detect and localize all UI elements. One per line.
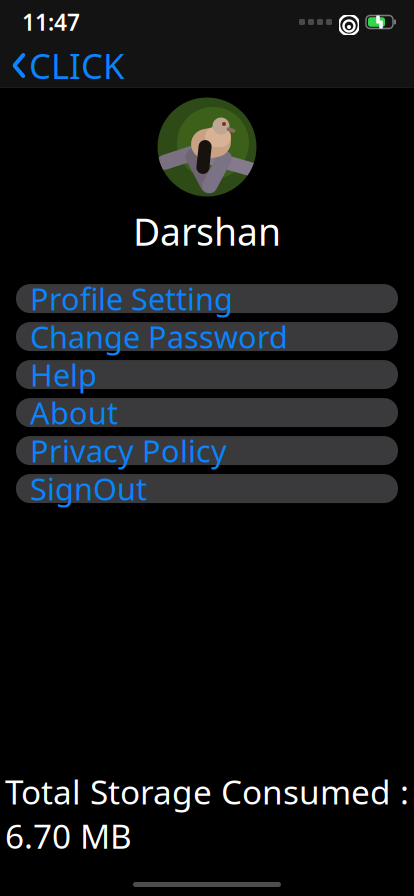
staticText: 11:47 (22, 7, 80, 37)
staticText: Help (30, 354, 97, 395)
button[interactable]: About (16, 398, 398, 427)
staticText: SignOut (30, 468, 147, 509)
staticText: Change Password (30, 316, 288, 357)
button[interactable]: Privacy Policy (16, 436, 398, 465)
staticText: About (30, 392, 118, 433)
staticText: CLICK (29, 42, 124, 88)
button[interactable]: Help (16, 360, 398, 389)
button[interactable]: Change Password (16, 322, 398, 351)
button[interactable]: Profile Setting (16, 284, 398, 313)
staticText: Total Storage Consumed : 6.70 MB (5, 769, 409, 858)
staticText: Darshan (133, 206, 281, 256)
staticText: Privacy Policy (30, 430, 227, 471)
button[interactable]: SignOut (16, 474, 398, 503)
button[interactable]: CLICK (0, 38, 136, 92)
staticText: Profile Setting (30, 278, 233, 319)
